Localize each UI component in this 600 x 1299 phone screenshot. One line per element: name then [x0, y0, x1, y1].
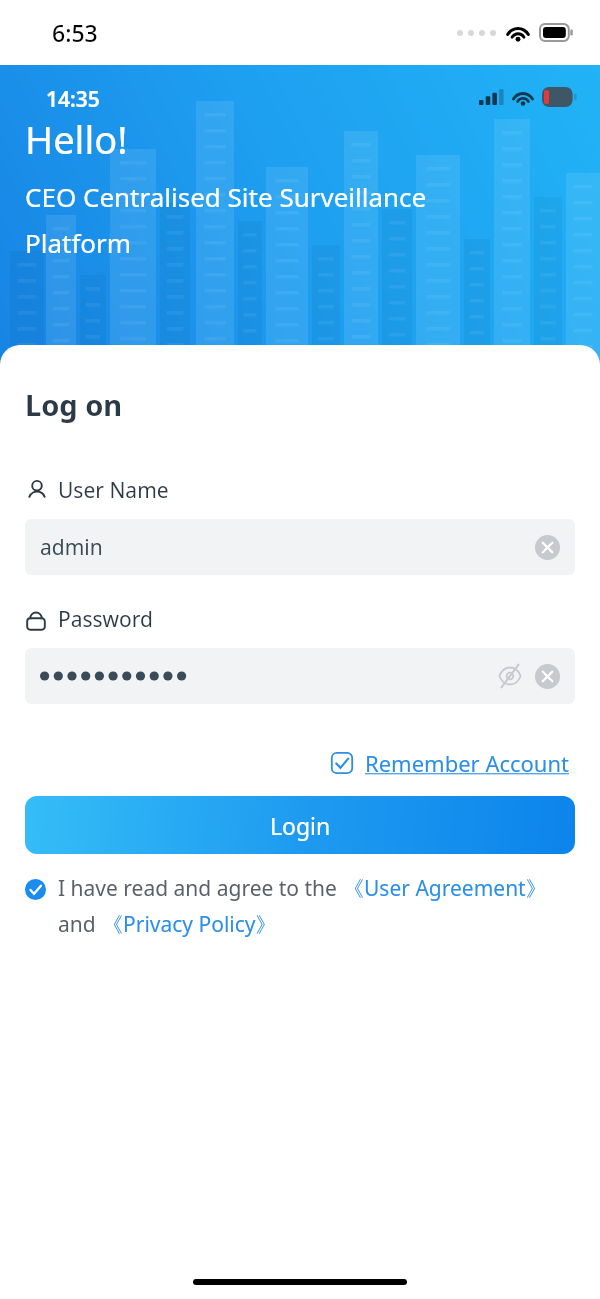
button[interactable]: Agree to terms: [25, 879, 46, 900]
staticText: Login: [270, 810, 331, 841]
button[interactable]: Toggle password visibility: [497, 663, 523, 689]
button[interactable]: Clear: [535, 664, 560, 689]
button[interactable]: 《User Agreement》: [343, 874, 547, 903]
button[interactable]: Clear: [535, 535, 560, 560]
button[interactable]: 《Privacy Policy》: [102, 910, 277, 939]
staticText: and: [58, 910, 102, 939]
button[interactable]: Remember Account: [327, 744, 574, 782]
staticText: CEO Centralised Site Surveillance Platfo…: [25, 179, 427, 261]
button[interactable]: Toggle password visibility: [25, 648, 575, 704]
button[interactable]: Login: [25, 796, 575, 854]
staticText: 14:35: [46, 85, 100, 114]
staticText: Log on: [25, 385, 123, 424]
staticText: Remember Account: [365, 748, 570, 778]
staticText: I have read and agree to the: [58, 874, 343, 903]
staticText: admin: [40, 533, 103, 562]
staticText: User Name: [58, 476, 169, 505]
button[interactable]: admin: [25, 519, 575, 575]
staticText: Hello!: [25, 113, 128, 165]
staticText: 6:53: [52, 17, 98, 48]
staticText: Password: [58, 605, 153, 634]
